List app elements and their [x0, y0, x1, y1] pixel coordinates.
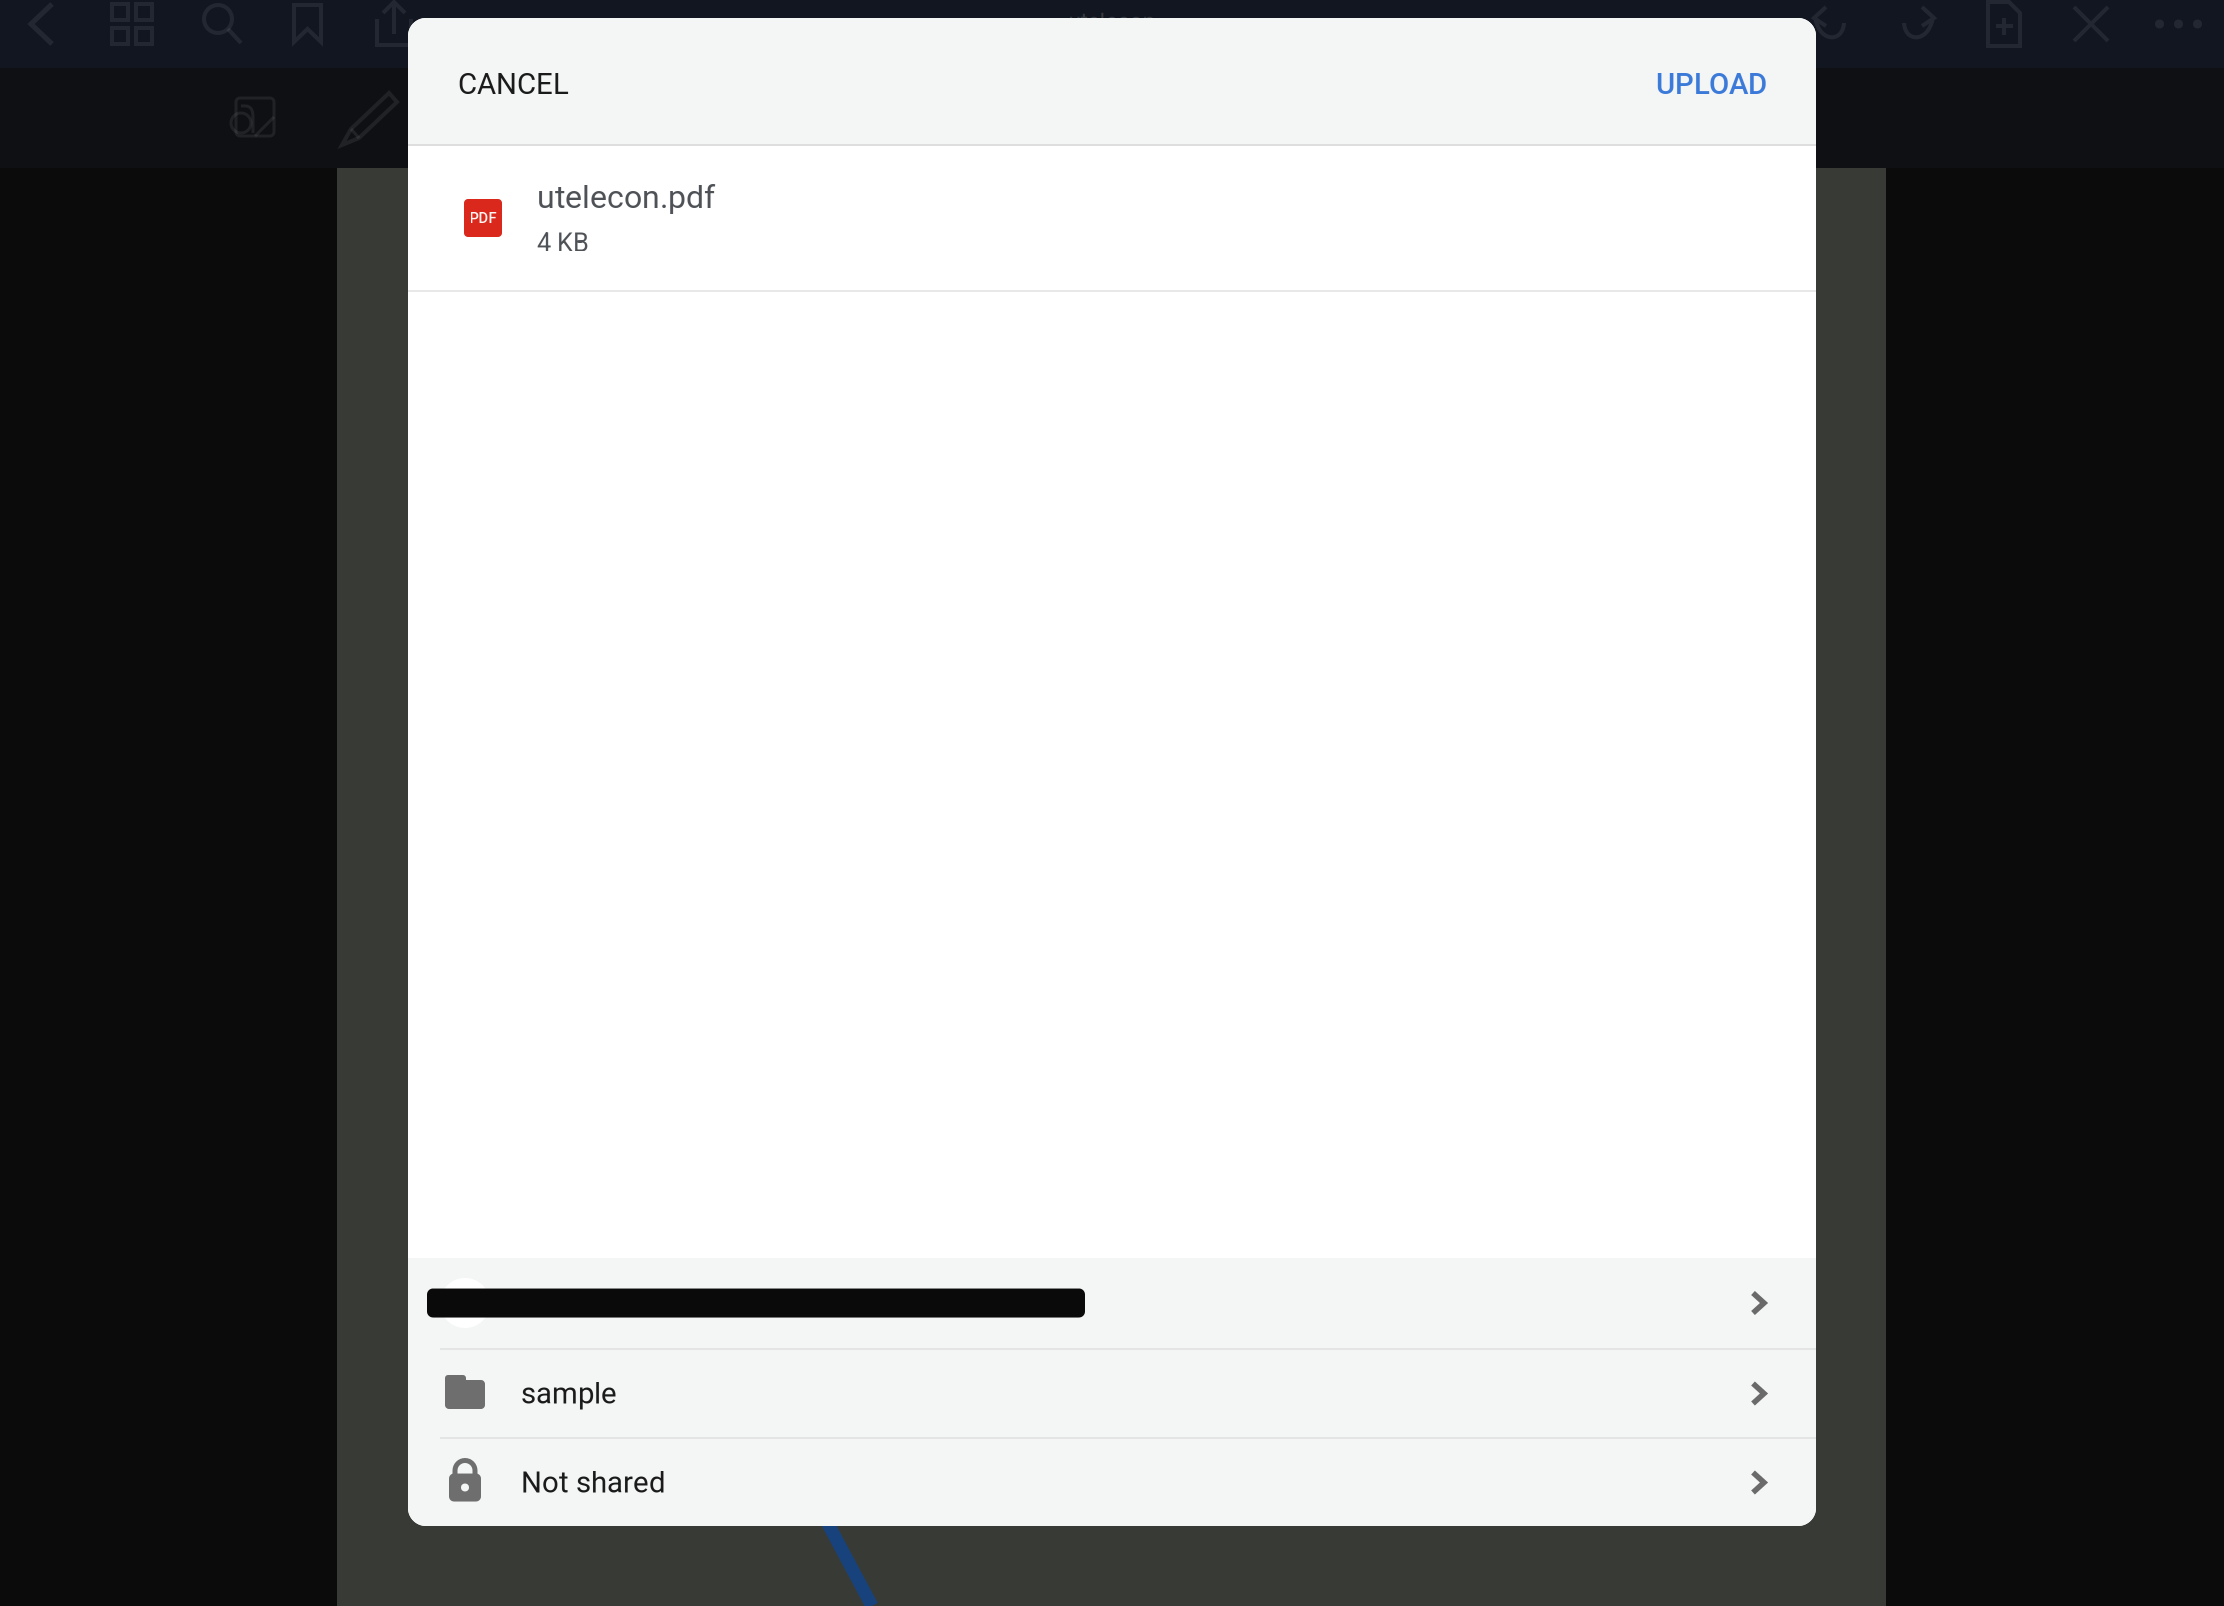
button[interactable]: CANCEL [408, 26, 605, 136]
button[interactable]: Redo [1895, 1, 1941, 47]
staticText: utelecon [1068, 8, 1155, 34]
button[interactable]: Bookmarks [291, 2, 324, 46]
button[interactable]: Search [200, 1, 245, 47]
staticText: 4 KB [537, 228, 589, 258]
button[interactable]: Back [27, 1, 56, 47]
button[interactable]: New page [1985, 0, 2024, 48]
staticText: CANCEL [458, 67, 569, 101]
button[interactable]: Pen [338, 89, 402, 149]
staticText: utelecon.pdf [537, 178, 715, 216]
button[interactable]: Close [2071, 4, 2111, 44]
button[interactable]: Text tool [229, 96, 276, 138]
button[interactable]: sample [408, 1350, 1816, 1437]
staticText: PDF [469, 209, 496, 227]
button[interactable]: UPLOAD [1620, 26, 1816, 136]
button[interactable]: Share [373, 0, 416, 48]
button[interactable]: Page thumbnails [110, 2, 154, 46]
button[interactable]: Undo [1807, 1, 1853, 47]
staticText: UPLOAD [1656, 67, 1767, 101]
button[interactable]: Not shared [408, 1439, 1816, 1526]
button[interactable]: More options [2155, 4, 2202, 44]
staticText: sample [521, 1376, 617, 1411]
staticText: Not shared [521, 1465, 666, 1500]
button[interactable] [408, 1258, 1816, 1348]
